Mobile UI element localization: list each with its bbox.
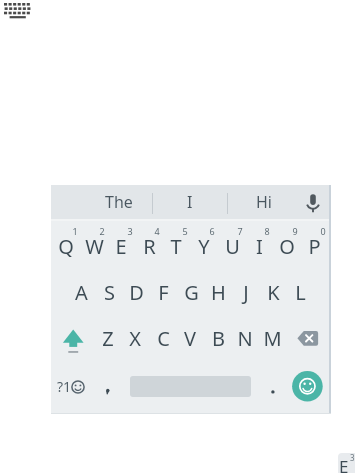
staticText: Y [198,233,210,260]
staticText: E [339,455,349,473]
staticText: 3 [350,453,355,463]
staticText: J [243,279,249,306]
staticText: E [115,233,127,260]
staticText: G [184,279,199,306]
button[interactable]: G [177,270,205,314]
staticText: T [170,233,182,260]
button[interactable] [59,325,87,355]
staticText: C [157,325,170,352]
button[interactable]: I [160,187,220,217]
button[interactable] [292,371,323,402]
staticText: 3 [127,225,133,237]
staticText: 1 [72,225,78,237]
button[interactable]: D [122,270,150,314]
button[interactable]: N [231,316,259,360]
staticText: Hi [256,191,272,213]
button[interactable]: T [162,224,190,268]
button[interactable]: A [67,270,95,314]
staticText: 4 [154,225,160,237]
button[interactable]: P [300,224,328,268]
button[interactable]: J [232,270,260,314]
staticText: 2 [99,225,105,237]
button[interactable]: B [204,316,232,360]
button[interactable]: V [176,316,204,360]
staticText: F [158,279,169,306]
staticText: N [237,325,253,352]
button[interactable]: Q [52,224,80,268]
staticText: 5 [182,225,188,237]
staticText: 7 [237,225,243,237]
button[interactable]: H [204,270,232,314]
button[interactable]: M [258,316,286,360]
staticText: 9 [292,225,298,237]
staticText: The [105,191,133,213]
staticText: I [256,233,263,260]
staticText: 6 [209,225,215,237]
staticText: X [129,325,141,352]
button[interactable]: S [95,270,123,314]
staticText: 8 [264,225,270,237]
staticText: V [184,325,196,352]
staticText: M [263,325,282,352]
button[interactable]: Z [94,316,122,360]
staticText: O [279,233,295,260]
button[interactable]: F [149,270,177,314]
button[interactable]: C [149,316,177,360]
staticText: H [211,279,226,306]
staticText: R [143,233,156,260]
button[interactable]: I [245,224,273,268]
staticText: ?1 [57,377,72,396]
button[interactable]: K [259,270,287,314]
button[interactable]: W [80,224,108,268]
staticText: A [75,279,88,306]
button[interactable]: X [121,316,149,360]
staticText: W [85,233,104,260]
button[interactable]: R [135,224,163,268]
button[interactable]: E [107,224,135,268]
button[interactable]: L [286,270,314,314]
staticText: U [225,233,240,260]
button[interactable]: The [84,187,154,217]
button[interactable]: Y [190,224,218,268]
button[interactable] [270,389,276,395]
button[interactable]: Hi [234,187,294,217]
staticText: 0 [320,225,326,237]
staticText: L [295,279,306,306]
staticText: S [104,279,115,306]
button[interactable] [295,328,321,349]
button[interactable] [4,3,32,19]
staticText: I [187,191,193,213]
staticText: B [212,325,225,352]
staticText: P [308,233,321,260]
button[interactable]: O [273,224,301,268]
button[interactable]: U [218,224,246,268]
staticText: Z [102,325,114,352]
button[interactable]: ?1 [53,372,91,400]
staticText: Q [58,233,74,260]
button[interactable] [102,382,114,396]
staticText: K [267,279,280,306]
button[interactable] [303,191,323,215]
staticText: D [129,279,144,306]
